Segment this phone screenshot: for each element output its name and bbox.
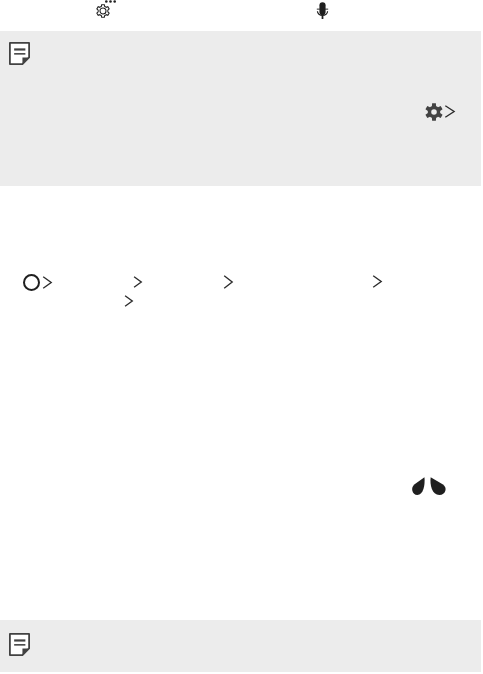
button[interactable]: Account bbox=[23, 274, 52, 291]
button[interactable]: More bbox=[223, 275, 233, 289]
button[interactable]: More bbox=[372, 275, 382, 288]
button[interactable]: Note bbox=[0, 31, 481, 186]
button[interactable]: Note bbox=[9, 42, 30, 65]
button[interactable]: Humidity bbox=[411, 477, 447, 495]
button[interactable]: Voice search bbox=[314, 0, 334, 20]
button[interactable]: Note bbox=[9, 633, 30, 656]
button[interactable]: More bbox=[124, 295, 133, 307]
button[interactable]: More bbox=[133, 276, 142, 288]
button[interactable]: Note bbox=[0, 620, 481, 672]
button[interactable]: Open settings bbox=[425, 101, 455, 122]
button[interactable]: Settings bbox=[93, 0, 117, 24]
